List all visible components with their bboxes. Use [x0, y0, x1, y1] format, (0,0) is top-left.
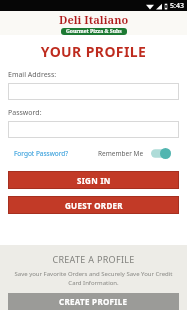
staticText: Deli Italiano: [59, 12, 129, 27]
staticText: Forgot Password?: [14, 149, 69, 158]
staticText: Save your Favorite Orders and Securely S…: [8, 270, 179, 287]
staticText: CREATE A PROFILE: [8, 253, 179, 265]
staticText: CREATE PROFILE: [59, 296, 128, 307]
staticText: 5:43: [170, 1, 184, 11]
button[interactable]: Remember Me: [94, 146, 175, 161]
button[interactable]: GUEST ORDER: [8, 196, 179, 214]
staticText: SIGN IN: [77, 175, 111, 186]
button[interactable]: CREATE PROFILE: [8, 293, 179, 310]
staticText: GUEST ORDER: [65, 200, 123, 211]
button[interactable]: Text input: [8, 83, 179, 100]
button[interactable]: Forgot Password?: [8, 147, 75, 160]
button[interactable]: SIGN IN: [8, 171, 179, 189]
staticText: Email Address:: [8, 70, 57, 80]
staticText: Remember Me: [98, 149, 144, 158]
staticText: Password:: [8, 108, 42, 118]
button[interactable]: Text input: [8, 121, 179, 138]
staticText: YOUR PROFILE: [0, 42, 187, 61]
staticText: Gourmet Pizza & Subs: [66, 28, 122, 35]
button[interactable]: Remember Me toggle: [151, 148, 171, 159]
